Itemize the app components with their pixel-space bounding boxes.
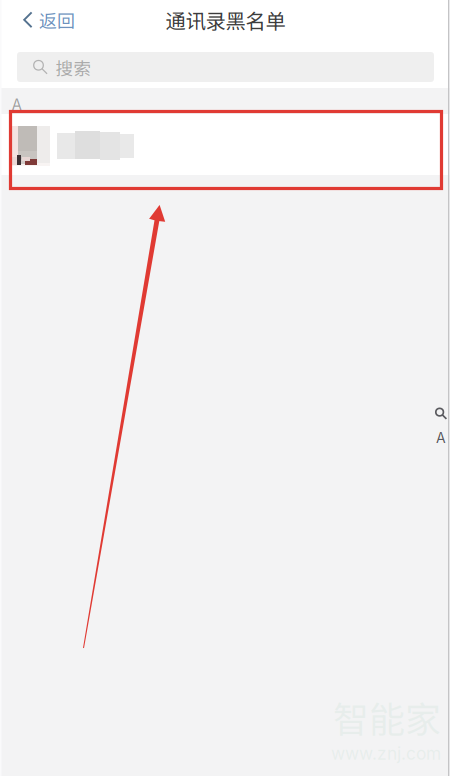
button[interactable] xyxy=(0,114,451,175)
staticText: 返回 xyxy=(39,7,75,33)
staticText: A xyxy=(436,429,446,446)
staticText: 通讯录黑名单 xyxy=(165,5,285,35)
button[interactable]: A xyxy=(433,432,449,444)
staticText: 智能家 xyxy=(333,691,441,743)
staticText: 搜索 xyxy=(55,55,91,80)
button[interactable]: Search index xyxy=(433,407,449,420)
staticText: www.znj.com xyxy=(331,743,441,764)
button[interactable]: 返回 xyxy=(0,0,89,44)
staticText: A xyxy=(11,96,22,114)
button[interactable]: 搜索 xyxy=(0,44,451,88)
